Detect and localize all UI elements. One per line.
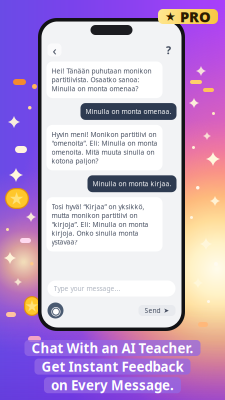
- staticText: Minulla on monta omenaa.: [85, 107, 171, 116]
- staticText: Chat With an AI Teacher.: [31, 339, 193, 357]
- button[interactable]: Help: [161, 43, 175, 56]
- staticText: ?: [166, 43, 171, 57]
- staticText: Send: [144, 306, 160, 315]
- staticText: on Every Message.: [51, 376, 174, 394]
- button[interactable]: Back: [47, 43, 61, 56]
- staticText: Tosi hyvä! “Kirjaa” on yksikkö, mutta mo…: [51, 202, 148, 246]
- staticText: PRO: [180, 7, 211, 26]
- staticText: Hei! Tänään puhutaan monikon partitiivis…: [51, 66, 151, 93]
- staticText: ★: [25, 297, 39, 315]
- staticText: ★: [165, 10, 176, 23]
- button[interactable]: Send: [138, 305, 175, 316]
- staticText: ★: [9, 189, 25, 208]
- staticText: Type your message...: [53, 284, 120, 293]
- button[interactable]: ★: [158, 9, 218, 24]
- button[interactable]: Type your message...: [47, 280, 175, 296]
- button[interactable]: Voice input: [47, 302, 63, 318]
- staticText: ◉: [50, 304, 60, 317]
- staticText: ➤: [163, 307, 169, 314]
- staticText: Get Instant Feedback: [41, 358, 183, 375]
- staticText: ‹: [52, 41, 56, 59]
- staticText: Minulla on monta kirjaa.: [92, 179, 171, 188]
- staticText: Hyvin meni! Monikon partitiivi on “omeno…: [51, 130, 157, 165]
